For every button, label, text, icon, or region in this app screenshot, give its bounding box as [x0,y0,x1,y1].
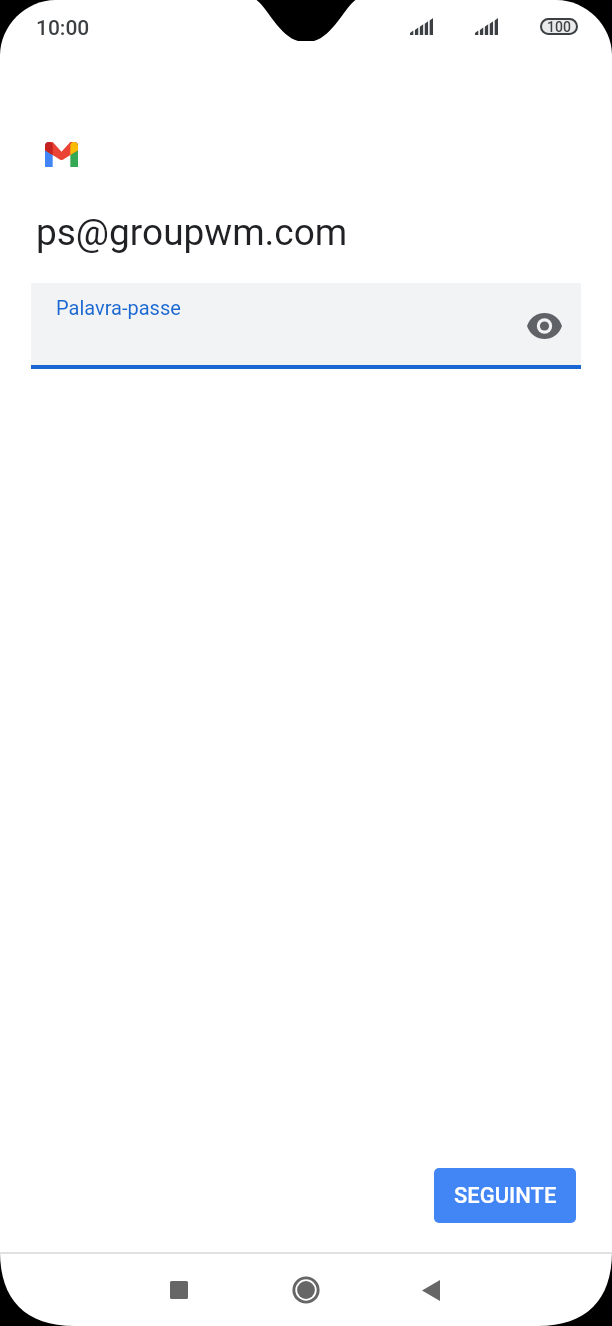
button[interactable]: Gmail [38,130,85,177]
button[interactable]: Mostrar palavra-passe [522,304,566,348]
staticText: SEGUINTE [454,1183,557,1209]
button[interactable]: Recentes [149,1254,209,1326]
staticText: ps@groupwm.com [36,211,348,254]
staticText: 100 [547,19,571,35]
button[interactable]: Voltar [401,1254,461,1326]
button[interactable]: Ecra inicial [276,1254,336,1326]
staticText: Palavra-passe [56,296,181,319]
button[interactable]: SEGUINTE [434,1168,576,1223]
staticText: 10:00 [36,16,90,41]
button[interactable]: Palavra-passe [31,283,581,365]
